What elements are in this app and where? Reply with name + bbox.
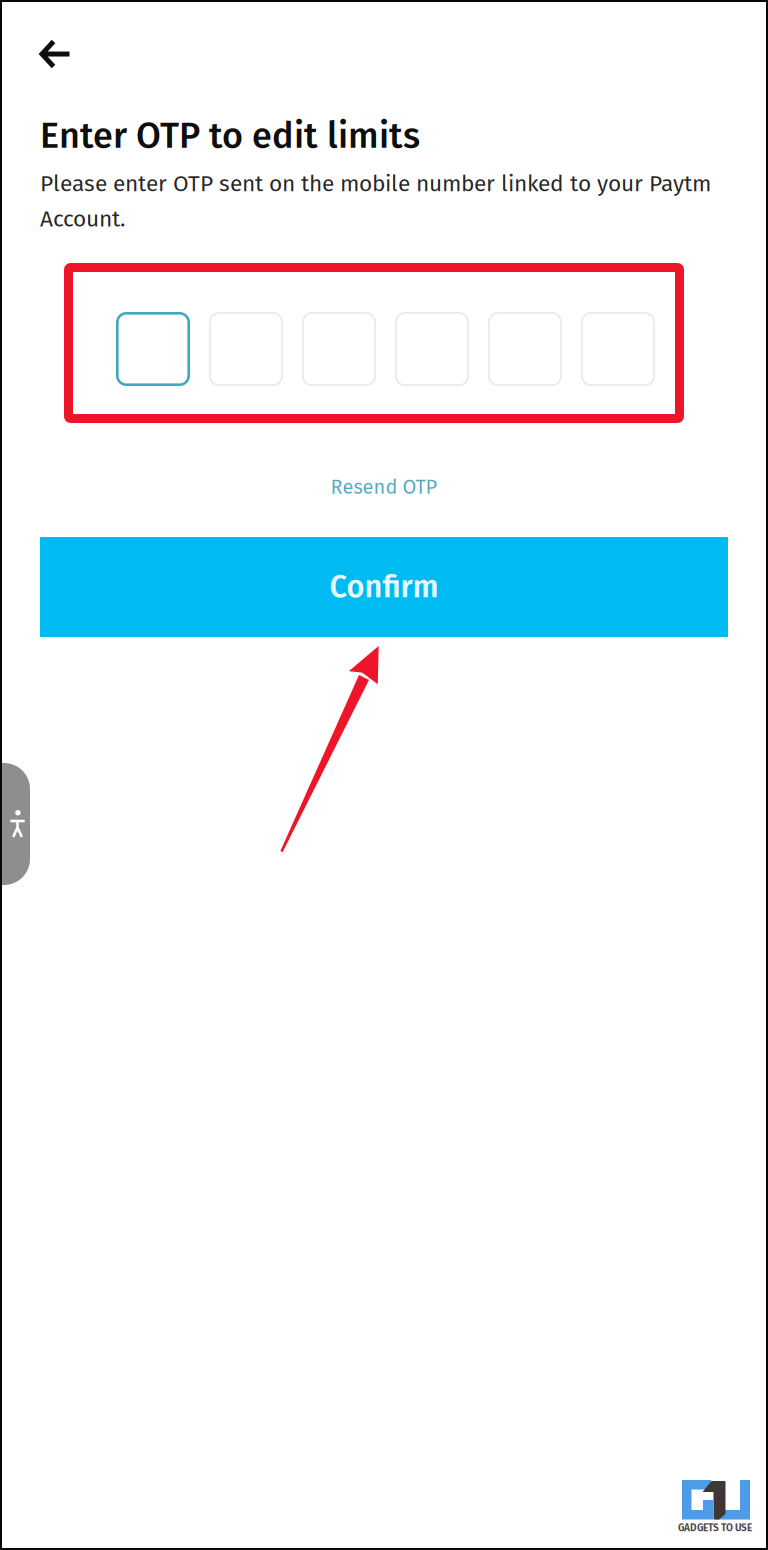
staticText: Please enter OTP sent on the mobile numb… <box>40 170 711 197</box>
button[interactable]: Resend OTP <box>284 467 484 507</box>
button[interactable]: Confirm <box>40 537 728 637</box>
staticText: Resend OTP <box>330 475 437 499</box>
staticText: GADGETS TO USE <box>678 1522 752 1534</box>
staticText: Account. <box>40 205 125 232</box>
button[interactable]: Accessibility <box>2 763 33 885</box>
staticText: Enter OTP to edit limits <box>40 114 420 157</box>
staticText: Confirm <box>329 569 438 605</box>
button[interactable]: Back <box>19 21 91 87</box>
